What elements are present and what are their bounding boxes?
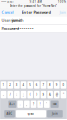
staticText: 4 [22, 83, 24, 87]
button[interactable]: ( [27, 91, 33, 98]
staticText: 8 [49, 83, 51, 87]
staticText: Enter Password [21, 9, 51, 15]
staticText: 0 [62, 83, 64, 87]
button[interactable]: . [17, 100, 23, 108]
button[interactable]: 8 [47, 81, 53, 89]
staticText: , [26, 102, 27, 106]
button[interactable]: , [24, 100, 30, 108]
staticText: @ [56, 93, 58, 96]
button[interactable]: ' [44, 100, 50, 108]
button[interactable]: @ [54, 91, 60, 98]
button[interactable]: ABC [4, 110, 15, 117]
button[interactable]: 6 [34, 81, 40, 89]
staticText: 5 [29, 83, 31, 87]
button[interactable]: ⌫ [51, 100, 59, 108]
staticText: - [3, 93, 4, 96]
staticText: . [20, 102, 21, 106]
button[interactable]: 4 [21, 81, 26, 89]
button[interactable]: : [14, 91, 20, 98]
staticText: Cancel [1, 9, 13, 15]
staticText: Enter the password for “HomeNet” [10, 4, 57, 8]
button[interactable]: space [16, 110, 46, 117]
button[interactable]: 0 [61, 81, 66, 89]
button[interactable]: ! [37, 100, 43, 108]
staticText: ABC [7, 112, 13, 115]
staticText: space [27, 112, 34, 115]
staticText: 9 [56, 83, 58, 87]
staticText: Password [1, 26, 18, 31]
button[interactable]: Join [60, 9, 66, 15]
staticText: ⌫ [53, 103, 57, 106]
staticText: 9:41 AM [29, 0, 41, 3]
staticText: 6 [36, 83, 38, 87]
staticText: Join [60, 9, 66, 15]
button[interactable]: ? [31, 100, 36, 108]
button[interactable]: Cancel [1, 9, 13, 15]
button[interactable]: 7 [41, 81, 46, 89]
staticText: #+= [9, 102, 15, 106]
staticText: " [63, 93, 64, 96]
staticText: : [16, 93, 17, 96]
button[interactable]: / [7, 91, 13, 98]
button[interactable]: 1 [1, 81, 6, 89]
staticText: & [49, 93, 51, 96]
staticText: $ [42, 93, 44, 96]
button[interactable]: & [47, 91, 53, 98]
staticText: ) [36, 93, 37, 96]
staticText: ••••• AT&T [1, 0, 13, 3]
staticText: jsmith [12, 17, 23, 23]
staticText: Join [52, 112, 58, 115]
button[interactable]: " [61, 91, 66, 98]
staticText: / [10, 93, 11, 96]
staticText: Username [1, 17, 20, 23]
button[interactable]: Join [47, 110, 63, 117]
button[interactable]: $ [41, 91, 46, 98]
button[interactable]: ) [34, 91, 40, 98]
button[interactable]: - [1, 91, 6, 98]
staticText: 2 [9, 83, 11, 87]
button[interactable]: ; [21, 91, 26, 98]
button[interactable]: 2 [7, 81, 13, 89]
staticText: ( [30, 93, 31, 96]
button[interactable]: 5 [27, 81, 33, 89]
button[interactable]: #+= [8, 100, 16, 108]
staticText: ••••••••••• [12, 26, 34, 31]
staticText: 1 [3, 83, 5, 87]
button[interactable]: 3 [14, 81, 20, 89]
staticText: 100% [58, 0, 66, 3]
staticText: 3 [16, 83, 18, 87]
button[interactable]: 9 [54, 81, 60, 89]
staticText: 7 [42, 83, 44, 87]
staticText: ! [40, 102, 41, 106]
staticText: ? [33, 102, 34, 106]
staticText: ' [46, 102, 47, 106]
